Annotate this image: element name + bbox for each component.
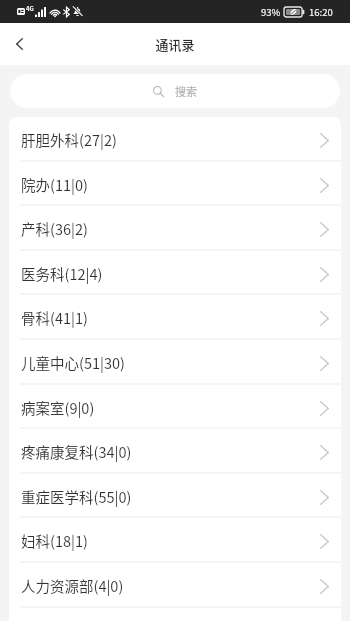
staticText: 妇科(18|1) xyxy=(21,530,88,551)
button[interactable]: 儿童中心(51|30) xyxy=(9,340,341,385)
button[interactable]: 医务科(12|4) xyxy=(9,251,341,295)
staticText: 疼痛康复科(34|0) xyxy=(21,441,132,462)
button[interactable]: 肝胆外科(27|2) xyxy=(9,117,341,162)
staticText: 通讯录 xyxy=(155,35,195,54)
staticText: 病案室(9|0) xyxy=(21,397,95,418)
button[interactable]: Back xyxy=(0,23,42,65)
staticText: 搜索 xyxy=(175,83,197,99)
staticText: 骨科(41|1) xyxy=(21,307,88,328)
button[interactable]: 疼痛康复科(34|0) xyxy=(9,429,341,474)
staticText: 院办(11|0) xyxy=(21,174,88,195)
button[interactable]: 产科(36|2) xyxy=(9,206,341,251)
button[interactable]: 病案室(9|0) xyxy=(9,385,341,429)
button[interactable]: 搜索 xyxy=(10,74,340,108)
button[interactable]: 重症医学科(55|0) xyxy=(9,474,341,518)
staticText: 人力资源部(4|0) xyxy=(21,575,124,596)
staticText: 重症医学科(55|0) xyxy=(21,486,132,507)
button[interactable]: 妇科(18|1) xyxy=(9,518,341,563)
button[interactable]: 人力资源部(4|0) xyxy=(9,563,341,608)
button[interactable]: 骨科(41|1) xyxy=(9,295,341,340)
staticText: 儿童中心(51|30) xyxy=(21,352,125,373)
staticText: 产科(36|2) xyxy=(21,218,88,239)
staticText: 4G xyxy=(26,4,34,13)
staticText: 16:20 xyxy=(309,5,333,19)
button[interactable]: 院办(11|0) xyxy=(9,162,341,206)
staticText: 医务科(12|4) xyxy=(21,263,103,284)
staticText: 93% xyxy=(261,5,281,19)
staticText: 肝胆外科(27|2) xyxy=(21,129,117,150)
